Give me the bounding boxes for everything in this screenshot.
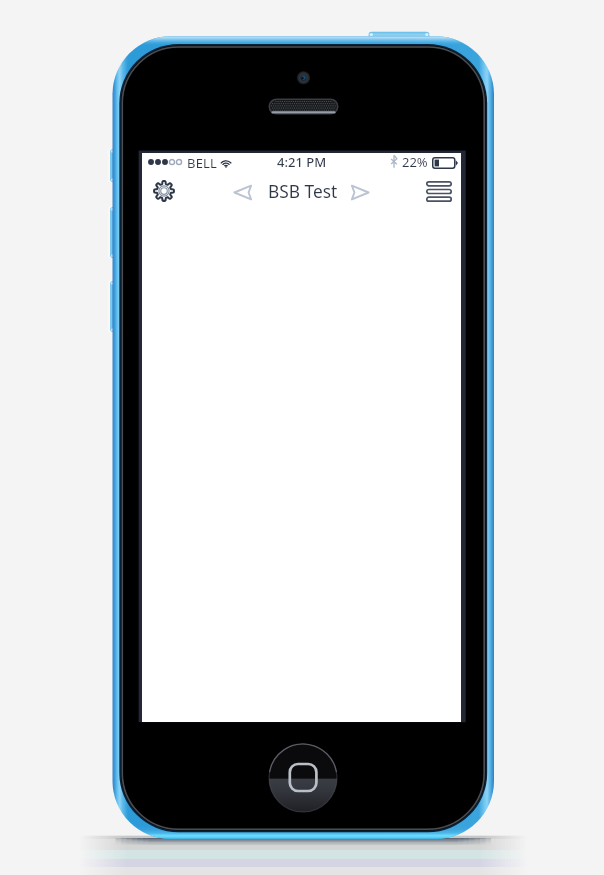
staticText: 22% — [402, 153, 428, 171]
button[interactable]: Menu — [423, 176, 455, 206]
button[interactable]: Previous — [229, 179, 256, 205]
staticText: BELL — [187, 154, 218, 172]
button[interactable]: Next — [346, 179, 373, 205]
staticText: 4:21 PM — [277, 153, 327, 171]
button[interactable]: Settings — [148, 175, 180, 207]
staticText: BSB Test — [268, 180, 338, 204]
